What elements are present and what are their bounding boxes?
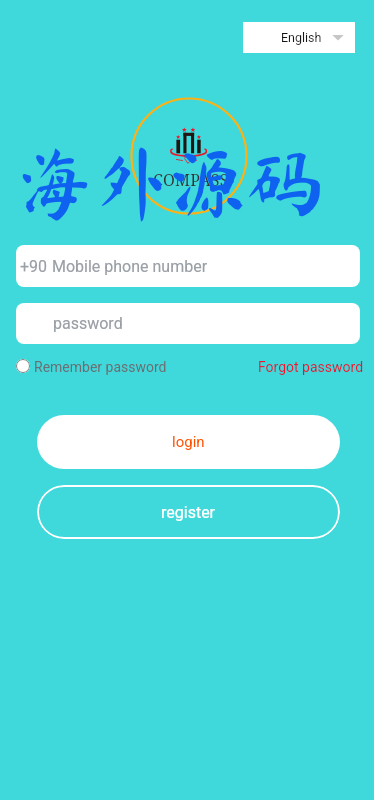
staticText: Mobile phone number: [52, 257, 208, 276]
button[interactable]: password: [16, 303, 360, 344]
staticText: login: [172, 433, 205, 451]
staticText: password: [53, 314, 123, 333]
staticText: COMPASS: [153, 169, 229, 191]
staticText: Forgot password: [258, 359, 364, 375]
button[interactable]: Forgot password: [252, 356, 374, 378]
button[interactable]: login: [37, 415, 340, 469]
staticText: Remember password: [34, 359, 167, 375]
staticText: 海外源码: [16, 143, 323, 221]
button[interactable]: register: [37, 485, 340, 539]
button[interactable]: Remember password: [0, 356, 171, 378]
button[interactable]: English: [243, 22, 355, 53]
staticText: +90: [20, 257, 48, 276]
staticText: English: [281, 30, 322, 45]
staticText: register: [161, 503, 216, 522]
button[interactable]: +90: [16, 245, 360, 287]
